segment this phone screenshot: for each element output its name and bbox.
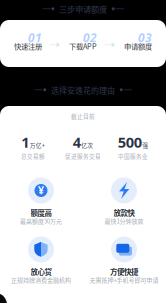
staticText: 最快1分钟放款: [104, 217, 143, 225]
staticText: 选择安逸花的理由: [51, 84, 115, 96]
staticText: 方便快捷: [110, 266, 138, 277]
button[interactable]: 方便快捷: [82, 236, 165, 292]
staticText: 截止目前: [71, 112, 95, 120]
staticText: 总交易额: [21, 152, 45, 160]
button[interactable]: 放款快: [82, 177, 165, 233]
staticText: 1: [21, 132, 29, 152]
staticText: 01: [28, 29, 42, 45]
staticText: 4: [73, 132, 81, 152]
staticText: ¥: [38, 183, 44, 197]
staticText: 正规持牌消费金融机构: [11, 276, 71, 284]
staticText: 02: [83, 29, 97, 45]
button[interactable]: 03: [112, 20, 164, 67]
staticText: 最高额度30万元: [20, 217, 62, 225]
staticText: 下载APP: [69, 41, 97, 51]
staticText: 强: [142, 141, 148, 149]
staticText: 三步申请额度: [59, 3, 107, 15]
button[interactable]: 02: [57, 20, 109, 67]
staticText: 放心贷: [30, 266, 51, 277]
button[interactable]: ¥: [0, 177, 82, 233]
button[interactable]: 放心贷: [0, 236, 82, 292]
staticText: 放款快: [113, 207, 134, 218]
staticText: 额度高: [30, 207, 51, 218]
staticText: 无需抵押+手机号即可申请: [89, 276, 158, 284]
staticText: 万亿+: [30, 141, 45, 149]
staticText: 促进服务交易: [65, 152, 101, 160]
staticText: 500: [118, 132, 142, 152]
staticText: 03: [138, 29, 152, 45]
staticText: 快速注册: [14, 41, 42, 51]
staticText: 亿次: [81, 141, 93, 149]
staticText: 申请额度: [124, 41, 152, 51]
staticText: 中国服务业: [118, 152, 148, 160]
button[interactable]: 01: [2, 20, 54, 67]
